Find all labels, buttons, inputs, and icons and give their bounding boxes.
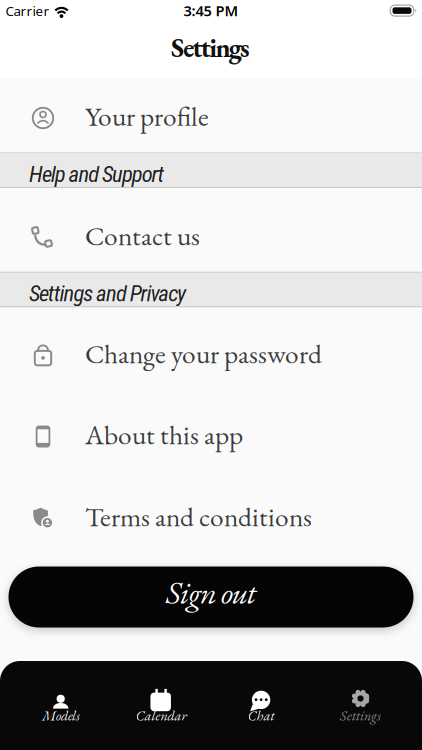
button[interactable]: Chat [213,674,308,730]
staticText: Calendar [135,706,186,725]
button[interactable]: Models [13,674,108,730]
button[interactable]: Change your password [0,319,422,391]
button[interactable]: Sign out [8,566,413,627]
staticText: Contact us [85,218,200,253]
button[interactable]: Contact us [0,201,422,273]
staticText: Settings [171,30,250,65]
staticText: Help and Support [29,161,164,187]
staticText: Chat [247,706,274,725]
button[interactable]: About this app [0,400,422,472]
button[interactable]: Terms and conditions [0,482,422,554]
staticText: Models [42,706,80,725]
staticText: Change your password [85,336,322,371]
staticText: About this app [85,417,243,452]
button[interactable]: Your profile [0,82,422,154]
staticText: Carrier [5,2,49,20]
button[interactable]: Settings [313,674,408,730]
staticText: Settings and Privacy [29,280,186,307]
staticText: Settings [340,706,381,725]
staticText: Sign out [166,572,256,613]
staticText: 3:45 PM [183,1,238,20]
staticText: Your profile [85,98,209,134]
staticText: Terms and conditions [85,499,312,534]
button[interactable]: Calendar [113,674,208,730]
